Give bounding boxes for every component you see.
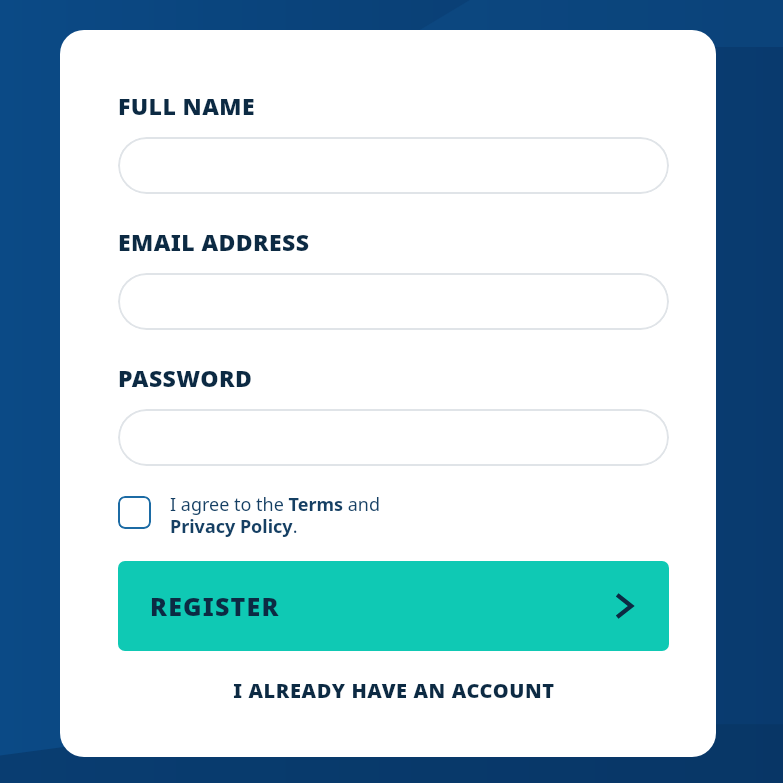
staticText: PASSWORD (118, 362, 253, 393)
button[interactable] (118, 273, 669, 330)
staticText: FULL NAME (118, 90, 255, 121)
button[interactable] (118, 137, 669, 194)
button[interactable]: I ALREADY HAVE AN ACCOUNT (118, 677, 669, 704)
staticText: I agree to the Terms and Privacy Policy. (170, 492, 381, 539)
button[interactable] (118, 409, 669, 466)
button[interactable]: REGISTER (118, 561, 669, 651)
button[interactable]: Agree to terms checkbox (118, 492, 669, 539)
staticText: EMAIL ADDRESS (118, 226, 310, 257)
staticText: I ALREADY HAVE AN ACCOUNT (233, 677, 555, 704)
other: Agree to terms checkbox (118, 496, 151, 529)
staticText: REGISTER (150, 589, 280, 623)
